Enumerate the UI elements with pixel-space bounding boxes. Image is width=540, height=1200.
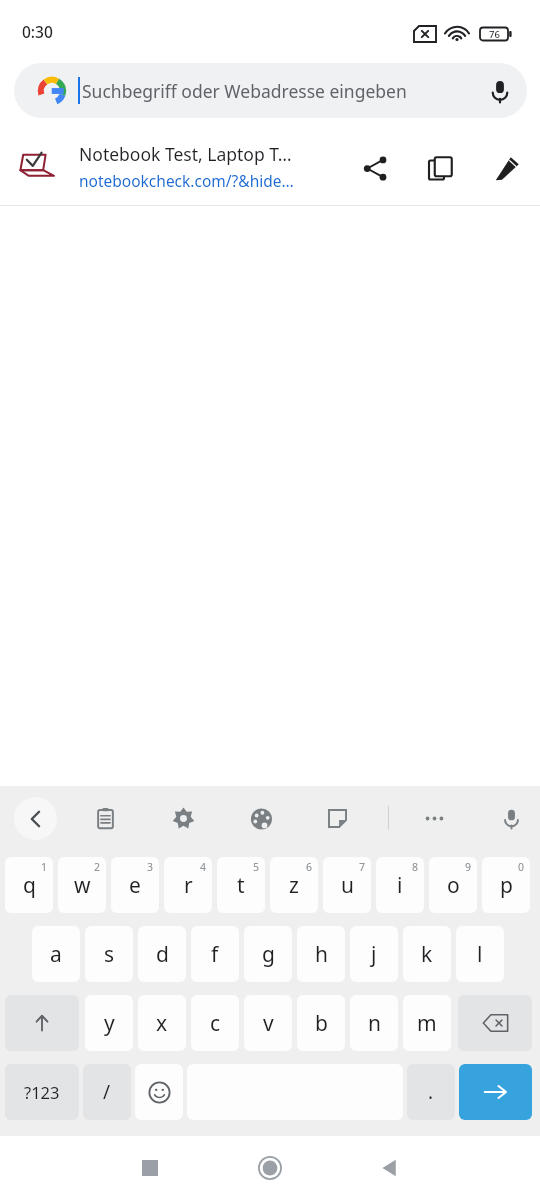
button[interactable]: a <box>32 926 80 982</box>
staticText: a <box>50 940 62 969</box>
button[interactable]: w <box>58 857 106 913</box>
staticText: t <box>237 871 245 900</box>
button[interactable]: d <box>138 926 186 982</box>
button[interactable]: Share <box>349 142 401 194</box>
button[interactable]: z <box>270 857 318 913</box>
button[interactable]: v <box>244 995 292 1051</box>
button[interactable]: j <box>350 926 398 982</box>
button[interactable]: m <box>403 995 451 1051</box>
button[interactable]: Voice input <box>489 796 533 840</box>
staticText: j <box>371 940 377 969</box>
button[interactable]: Notebook Test, Laptop T… <box>0 126 540 205</box>
button[interactable]: r <box>164 857 212 913</box>
button[interactable]: Enter <box>459 1064 532 1120</box>
staticText: c <box>210 1009 221 1038</box>
button[interactable]: Edit <box>481 142 533 194</box>
button[interactable]: u <box>323 857 371 913</box>
staticText: g <box>262 940 275 969</box>
staticText: / <box>103 1079 111 1105</box>
staticText: . <box>428 1079 434 1105</box>
button[interactable]: Back <box>14 797 57 840</box>
staticText: o <box>447 871 460 900</box>
button[interactable]: Themes <box>239 796 283 840</box>
staticText: 9 <box>465 860 472 874</box>
button[interactable]: / <box>83 1064 131 1120</box>
button[interactable]: Copy <box>414 142 466 194</box>
button[interactable]: More options <box>412 796 456 840</box>
staticText: 0:30 <box>22 21 53 42</box>
staticText: m <box>417 1009 437 1038</box>
staticText: n <box>368 1009 381 1038</box>
staticText: e <box>129 871 141 900</box>
button[interactable]: q <box>5 857 53 913</box>
button[interactable]: b <box>297 995 345 1051</box>
staticText: h <box>315 940 328 969</box>
staticText: b <box>315 1009 328 1038</box>
button[interactable]: n <box>350 995 398 1051</box>
staticText: u <box>341 871 354 900</box>
button[interactable]: o <box>429 857 477 913</box>
staticText: s <box>104 940 115 969</box>
staticText: v <box>263 1009 274 1038</box>
button[interactable]: . <box>407 1064 455 1120</box>
button[interactable]: Recents <box>118 1136 182 1200</box>
button[interactable]: i <box>376 857 424 913</box>
staticText: w <box>74 871 91 900</box>
staticText: 6 <box>306 860 313 874</box>
button[interactable]: y <box>85 995 133 1051</box>
button[interactable]: ?123 <box>5 1064 79 1120</box>
button[interactable]: Emoji <box>135 1064 183 1120</box>
staticText: k <box>421 940 433 969</box>
staticText: d <box>156 940 169 969</box>
staticText: 2 <box>94 860 101 874</box>
button[interactable]: p <box>482 857 530 913</box>
button[interactable]: l <box>456 926 504 982</box>
button[interactable]: Suchbegriff oder Webadresse eingeben <box>14 63 527 118</box>
staticText: Suchbegriff oder Webadresse eingeben <box>82 79 407 103</box>
button[interactable]: k <box>403 926 451 982</box>
button[interactable]: Home <box>238 1136 302 1200</box>
staticText: 4 <box>200 860 207 874</box>
staticText: z <box>289 871 299 900</box>
staticText: 8 <box>412 860 419 874</box>
staticText: 0 <box>518 860 525 874</box>
button[interactable]: g <box>244 926 292 982</box>
staticText: q <box>23 871 36 900</box>
button[interactable]: h <box>297 926 345 982</box>
staticText: Notebook Test, Laptop T… <box>79 142 292 166</box>
button[interactable]: Voice search <box>473 63 527 118</box>
button[interactable]: Shift <box>5 995 79 1051</box>
staticText: 76 <box>489 28 500 41</box>
staticText: notebookcheck.com/?&hide… <box>79 170 294 191</box>
staticText: ?123 <box>24 1081 60 1103</box>
staticText: y <box>104 1009 115 1038</box>
button[interactable]: e <box>111 857 159 913</box>
staticText: p <box>500 871 513 900</box>
button[interactable]: Stickers <box>315 796 359 840</box>
button[interactable]: Back <box>358 1136 422 1200</box>
staticText: 5 <box>253 860 260 874</box>
staticText: 1 <box>41 860 48 874</box>
staticText: f <box>211 940 219 969</box>
button[interactable]: s <box>85 926 133 982</box>
button[interactable]: x <box>138 995 186 1051</box>
button[interactable]: Clipboard <box>83 796 127 840</box>
button[interactable]: Backspace <box>458 995 532 1051</box>
staticText: i <box>397 871 403 900</box>
staticText: x <box>156 1009 168 1038</box>
button[interactable]: f <box>191 926 239 982</box>
button[interactable]: Settings <box>161 796 205 840</box>
staticText: l <box>477 940 483 969</box>
button[interactable]: c <box>191 995 239 1051</box>
staticText: r <box>184 871 193 900</box>
button[interactable]: t <box>217 857 265 913</box>
staticText: 3 <box>147 860 154 874</box>
staticText: 7 <box>359 860 366 874</box>
